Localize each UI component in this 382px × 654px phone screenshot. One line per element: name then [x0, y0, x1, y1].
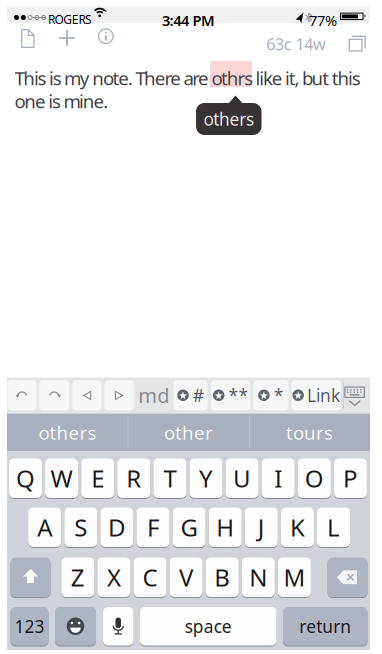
button[interactable]: H [209, 507, 242, 548]
staticText: L [327, 511, 340, 543]
button[interactable]: T [153, 458, 186, 499]
button[interactable]: U [226, 458, 259, 499]
button[interactable]: Emoji [55, 607, 96, 646]
button[interactable]: B [206, 557, 239, 598]
button[interactable]: Link [291, 380, 341, 410]
staticText: 63c 14w [266, 33, 326, 55]
staticText: W [51, 462, 73, 494]
staticText: space [185, 615, 232, 638]
button[interactable]: Dictate [103, 607, 133, 646]
staticText: J [258, 511, 265, 543]
staticText: Y [199, 462, 213, 494]
button[interactable]: others [7, 413, 127, 451]
staticText: O [305, 462, 324, 494]
button[interactable]: # [173, 380, 208, 410]
staticText: K [290, 511, 305, 543]
staticText: A [37, 511, 52, 543]
button[interactable]: return [283, 607, 367, 646]
staticText: P [343, 462, 358, 494]
button[interactable]: Y [189, 458, 222, 499]
staticText: This is my note. There are othrs like it… [14, 65, 361, 90]
button[interactable]: 123 [10, 607, 48, 646]
button[interactable]: L [317, 507, 350, 548]
button[interactable]: other [128, 413, 249, 451]
button[interactable]: E [81, 458, 114, 499]
button[interactable]: md [137, 380, 171, 410]
button[interactable]: J [245, 507, 278, 548]
staticText: X [107, 561, 121, 593]
button[interactable]: C [133, 557, 166, 598]
button[interactable]: R [117, 458, 150, 499]
staticText: H [216, 511, 234, 543]
staticText: G [181, 511, 198, 543]
button[interactable]: Undo [7, 380, 37, 410]
staticText: N [249, 561, 267, 593]
staticText: D [108, 511, 126, 543]
button[interactable]: Z [61, 557, 94, 598]
staticText: 3:44 PM [162, 10, 215, 30]
button[interactable]: Export [349, 36, 366, 52]
staticText: M [283, 561, 305, 593]
staticText: F [147, 511, 159, 543]
staticText: S [74, 511, 87, 543]
staticText: one is mine. [14, 88, 108, 113]
staticText: T [163, 462, 176, 494]
button[interactable]: S [64, 507, 97, 548]
staticText: Q [16, 462, 35, 494]
staticText: * [274, 384, 284, 407]
staticText: return [299, 615, 351, 638]
staticText: V [179, 561, 193, 593]
staticText: ** [228, 384, 248, 407]
button[interactable]: ** [211, 380, 250, 410]
button[interactable]: Redo [39, 380, 69, 410]
button[interactable]: New note [21, 29, 35, 48]
button[interactable]: P [334, 458, 367, 499]
button[interactable]: Move cursor right [104, 380, 134, 410]
staticText: U [233, 462, 251, 494]
staticText: others [38, 420, 96, 445]
button[interactable]: Shift [10, 557, 50, 598]
button[interactable]: Q [9, 458, 42, 499]
staticText: # [193, 384, 204, 407]
button[interactable]: Move cursor left [72, 380, 101, 410]
button[interactable]: X [97, 557, 130, 598]
button[interactable]: others [196, 103, 261, 135]
button[interactable]: K [281, 507, 314, 548]
button[interactable]: W [45, 458, 78, 499]
button[interactable]: N [242, 557, 275, 598]
staticText: others [203, 107, 254, 130]
staticText: other [164, 420, 213, 445]
staticText: R [126, 462, 141, 494]
button[interactable]: Delete [327, 557, 367, 598]
staticText: Link [307, 384, 340, 407]
button[interactable]: M [278, 557, 311, 598]
button[interactable]: A [28, 507, 61, 548]
staticText: E [91, 462, 104, 494]
staticText: I [274, 462, 282, 494]
button[interactable]: Add [59, 30, 75, 46]
button[interactable]: I [262, 458, 295, 499]
button[interactable]: V [170, 557, 203, 598]
button[interactable]: D [100, 507, 133, 548]
staticText: 77% [309, 10, 337, 30]
button[interactable]: Info [98, 28, 114, 44]
staticText: Z [71, 561, 85, 593]
button[interactable]: Dismiss keyboard [344, 386, 365, 406]
staticText: ROGERS [48, 11, 92, 27]
staticText: 123 [14, 615, 44, 638]
button[interactable]: O [298, 458, 331, 499]
button[interactable]: * [253, 380, 288, 410]
staticText: md [138, 382, 169, 409]
button[interactable]: F [136, 507, 169, 548]
staticText: B [214, 561, 230, 593]
button[interactable]: G [173, 507, 206, 548]
staticText: tours [286, 420, 333, 445]
button[interactable]: space [140, 607, 276, 646]
staticText: C [142, 561, 157, 593]
button[interactable]: tours [249, 413, 369, 451]
